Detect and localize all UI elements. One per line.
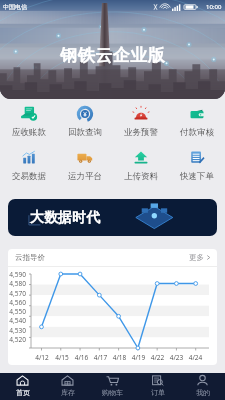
staticText: 4,590: [8, 270, 26, 279]
staticText: 业务预警: [124, 127, 158, 138]
staticText: 4/24: [186, 353, 205, 362]
button[interactable]: 首页: [0, 373, 45, 400]
button[interactable]: 付款审核: [169, 105, 225, 138]
button[interactable]: 应收账款: [0, 105, 57, 138]
staticText: 4,570: [8, 289, 26, 298]
button[interactable]: 快速下单: [169, 149, 225, 182]
staticText: 大数据时代: [30, 209, 100, 227]
button[interactable]: 更多: [189, 253, 211, 262]
staticText: 4,550: [8, 307, 26, 316]
button[interactable]: 业务预警: [113, 105, 169, 138]
staticText: 中国电信: [3, 3, 27, 11]
button[interactable]: 我的: [180, 373, 225, 400]
staticText: 4/22: [148, 353, 167, 362]
staticText: 运力平台: [68, 171, 102, 182]
staticText: 快速下单: [180, 171, 214, 182]
staticText: 4/19: [129, 353, 148, 362]
staticText: 4/17: [91, 353, 110, 362]
button[interactable]: 回款查询: [57, 105, 113, 138]
staticText: 回款查询: [68, 127, 102, 138]
button[interactable]: 大数据时代: [8, 199, 217, 236]
staticText: 4/16: [72, 353, 91, 362]
staticText: 4/23: [167, 353, 186, 362]
staticText: 4,530: [8, 326, 26, 335]
button[interactable]: 购物车: [90, 373, 135, 400]
staticText: 4/12: [32, 353, 52, 362]
staticText: 4/15: [52, 353, 72, 362]
staticText: 上传资料: [124, 171, 158, 182]
staticText: 4,520: [8, 335, 26, 344]
staticText: 订单: [151, 388, 165, 397]
staticText: 4,540: [8, 316, 26, 325]
staticText: 云指导价: [15, 253, 45, 262]
button[interactable]: 库存: [45, 373, 90, 400]
staticText: 4,580: [8, 279, 26, 288]
staticText: 首页: [16, 388, 30, 397]
staticText: 购物车: [102, 388, 123, 397]
button[interactable]: 交易数据: [0, 149, 57, 182]
staticText: 更多: [189, 253, 204, 262]
staticText: 钢铁云企业版: [60, 45, 165, 66]
staticText: 4/18: [110, 353, 129, 362]
staticText: 我的: [196, 388, 210, 397]
button[interactable]: 订单: [135, 373, 180, 400]
button[interactable]: 运力平台: [57, 149, 113, 182]
staticText: 10:00: [206, 3, 222, 11]
staticText: 库存: [61, 388, 75, 397]
staticText: 付款审核: [180, 127, 214, 138]
staticText: 4,560: [8, 298, 26, 307]
staticText: 应收账款: [12, 127, 46, 138]
button[interactable]: 上传资料: [113, 149, 169, 182]
staticText: 交易数据: [12, 171, 46, 182]
